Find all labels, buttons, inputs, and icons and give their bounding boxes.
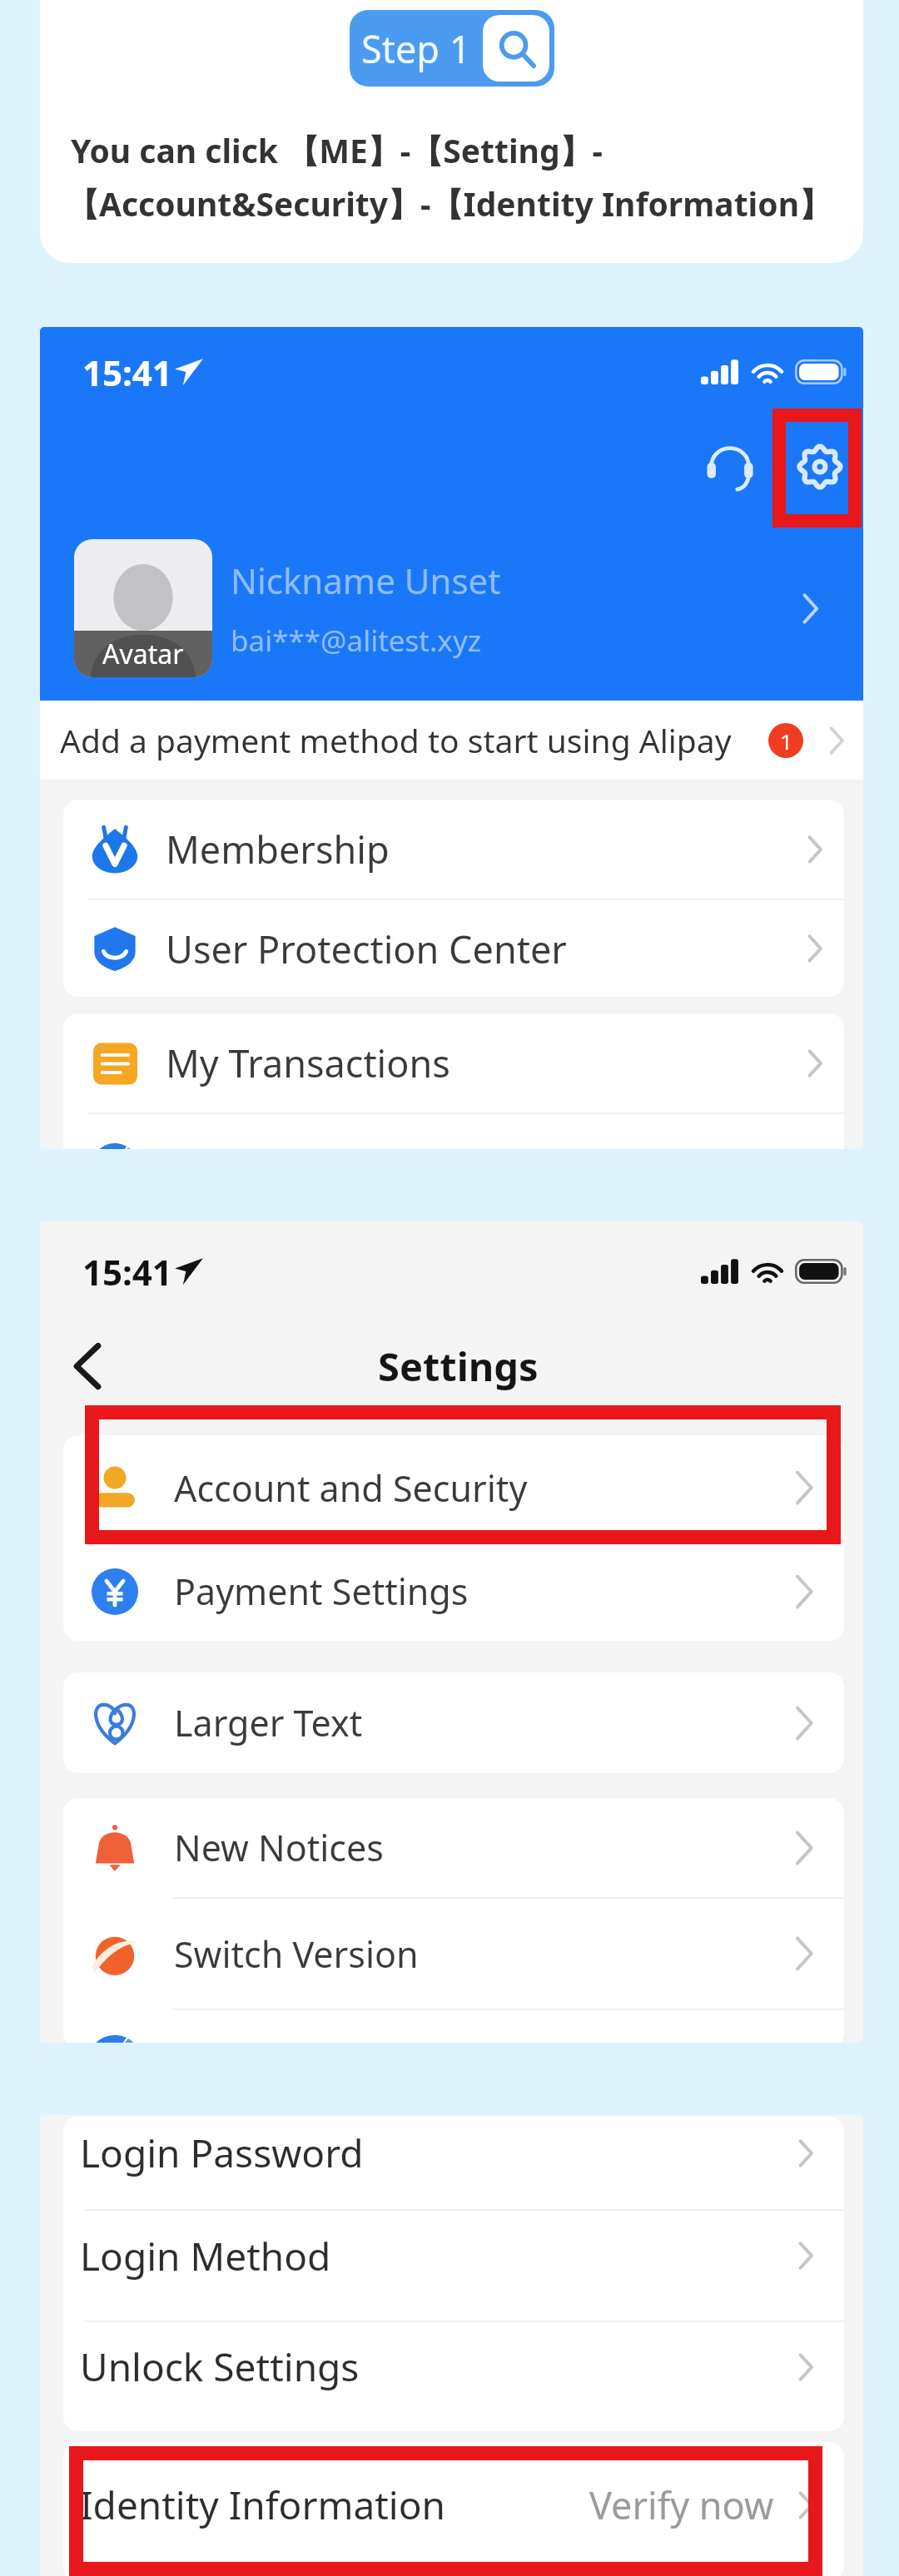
button[interactable]: Identity Information — [63, 2442, 844, 2574]
button[interactable]: Login Method — [63, 2201, 844, 2311]
staticText: 15:41 — [82, 349, 172, 395]
button[interactable]: Larger Text — [63, 1672, 844, 1773]
staticText: 15:41 — [82, 1248, 172, 1295]
staticText: Step 1 — [361, 23, 471, 74]
button[interactable]: New Notices — [63, 1798, 844, 1897]
button[interactable]: Settings — [778, 425, 862, 508]
staticText: Verify now — [589, 2479, 774, 2530]
staticText: Switch Version — [174, 1930, 419, 1979]
staticText: bai***@alitest.xyz — [231, 621, 482, 661]
button[interactable]: Payment Settings — [63, 1542, 844, 1641]
staticText: Membership — [166, 824, 390, 874]
staticText: Unlock Settings — [80, 2341, 360, 2393]
staticText: Nickname Unset — [231, 557, 501, 604]
button[interactable]: Unlock Settings — [63, 2312, 844, 2421]
button[interactable]: My Transactions — [63, 1013, 844, 1112]
button[interactable] — [63, 1114, 844, 1149]
staticText: Login Method — [80, 2230, 331, 2282]
staticText: New Notices — [174, 1823, 384, 1872]
button[interactable]: Back — [52, 1330, 123, 1402]
button[interactable]: Avatar — [40, 537, 863, 680]
button[interactable]: User Protection Center — [63, 900, 844, 997]
staticText: Settings — [378, 1340, 539, 1393]
staticText: Larger Text — [174, 1698, 363, 1747]
button[interactable]: Membership — [63, 800, 844, 899]
staticText: Avatar — [102, 636, 184, 672]
staticText: Account and Security — [174, 1464, 528, 1513]
button[interactable]: Step 1 — [350, 10, 554, 87]
staticText: You can click 【ME】-【Setting】- — [71, 128, 603, 172]
button[interactable] — [63, 2010, 844, 2043]
staticText: Login Password — [80, 2127, 364, 2179]
staticText: 【Account&Security】-【Identity Information… — [67, 181, 832, 225]
button[interactable]: Switch Version — [63, 1899, 844, 2009]
staticText: Payment Settings — [174, 1567, 469, 1616]
button[interactable]: Login Password — [63, 2117, 844, 2199]
staticText: User Protection Center — [166, 924, 567, 974]
staticText: Add a payment method to start using Alip… — [60, 718, 732, 762]
button[interactable]: Add a payment method to start using Alip… — [40, 701, 863, 780]
button[interactable]: Account and Security — [63, 1435, 844, 1540]
staticText: Identity Information — [80, 2479, 445, 2531]
staticText: 1 — [780, 726, 792, 755]
button[interactable]: Customer service — [688, 425, 772, 508]
staticText: My Transactions — [166, 1038, 450, 1088]
